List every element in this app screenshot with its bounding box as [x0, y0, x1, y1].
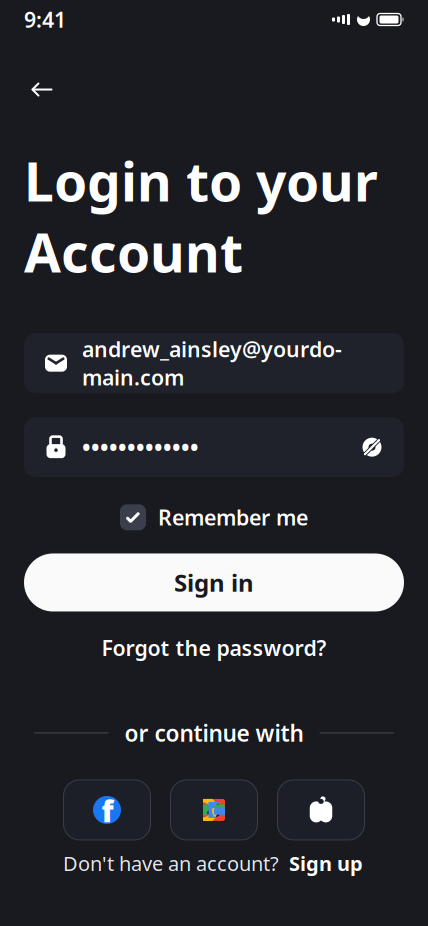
button[interactable]: Show password — [360, 435, 384, 459]
staticText: f — [101, 791, 113, 830]
staticText: Don't have an account? — [63, 850, 279, 876]
staticText: or continue with — [124, 718, 303, 748]
staticText: Login to your Account — [24, 145, 378, 287]
button[interactable]: Forgot the password? — [93, 629, 334, 666]
button[interactable]: Remember me — [116, 499, 312, 535]
staticText: andrew_ainsley@yourdomain.com — [82, 335, 342, 391]
staticText: 9:41 — [24, 5, 66, 34]
staticText: Forgot the password? — [101, 633, 326, 662]
button[interactable]: Sign in — [24, 553, 404, 611]
staticText: ••••••••••••• — [82, 432, 199, 462]
button[interactable]: Continue with Apple — [277, 780, 364, 840]
button[interactable]: Continue with Google — [170, 780, 257, 840]
button[interactable]: Sign up — [287, 848, 365, 878]
button[interactable]: Continue with Facebook — [63, 780, 150, 840]
staticText: Remember me — [158, 503, 308, 531]
button[interactable]: Back — [22, 69, 62, 109]
staticText: Sign up — [289, 850, 363, 876]
staticText: Sign in — [174, 567, 254, 598]
